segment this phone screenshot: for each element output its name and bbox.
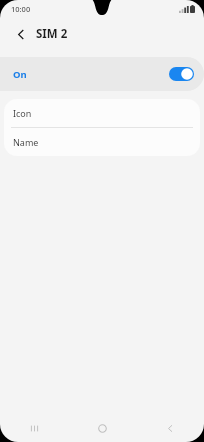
staticText: On (13, 68, 27, 81)
button[interactable]: On (0, 57, 204, 91)
staticText: Icon (13, 107, 32, 119)
button[interactable]: Icon (4, 99, 200, 127)
button[interactable]: Recent apps (0, 414, 68, 442)
button[interactable]: Home (68, 414, 136, 442)
staticText: Name (13, 136, 39, 148)
staticText: 10:00 (11, 4, 31, 14)
button[interactable]: Back (11, 24, 31, 44)
staticText: SIM 2 (36, 26, 68, 42)
button[interactable]: Back (136, 414, 204, 442)
button[interactable]: Name (4, 128, 200, 156)
